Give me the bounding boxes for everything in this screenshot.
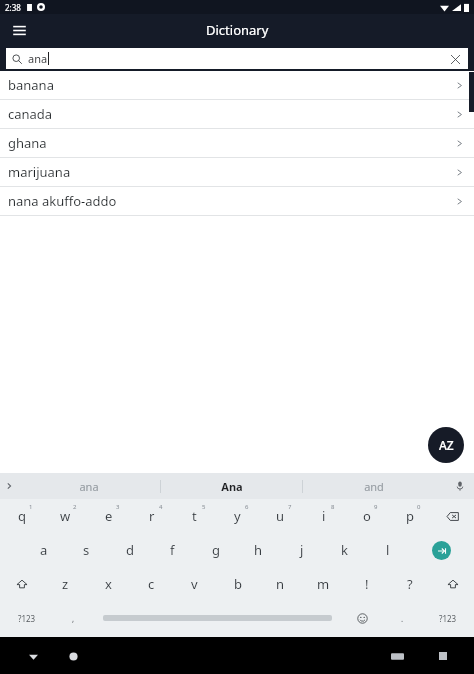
staticText: 0 (417, 503, 421, 511)
button[interactable]: Ana (161, 473, 302, 499)
button[interactable]: More suggestions (0, 477, 18, 495)
button[interactable]: Enter (409, 533, 474, 567)
staticText: ! (365, 575, 369, 593)
staticText: 5 (202, 503, 206, 511)
button[interactable]: j (280, 533, 323, 567)
button[interactable]: Shift (0, 567, 44, 601)
staticText: Ana (221, 479, 243, 494)
button[interactable]: Voice input (451, 477, 469, 495)
staticText: e (105, 507, 113, 525)
staticText: 2:38 (5, 2, 21, 13)
staticText: p (406, 507, 414, 525)
staticText: 9 (374, 503, 378, 511)
staticText: ?123 (439, 613, 457, 624)
button[interactable]: p (388, 499, 431, 533)
button[interactable]: Backspace (431, 499, 474, 533)
button[interactable]: Shift (431, 567, 474, 601)
button[interactable]: Space (93, 601, 342, 635)
button[interactable]: marijuana (0, 158, 474, 187)
staticText: ana (79, 479, 99, 494)
staticText: d (126, 541, 134, 559)
staticText: banana (8, 76, 54, 94)
button[interactable]: m (302, 567, 345, 601)
button[interactable]: banana (0, 71, 474, 100)
staticText: r (149, 507, 155, 525)
button[interactable]: Open navigation menu (6, 17, 32, 43)
staticText: canada (8, 105, 53, 123)
button[interactable]: w (44, 499, 87, 533)
staticText: , (72, 613, 75, 624)
button[interactable]: y (216, 499, 259, 533)
button[interactable]: e (87, 499, 130, 533)
button[interactable]: c (130, 567, 173, 601)
staticText: u (276, 507, 285, 525)
button[interactable]: ! (345, 567, 388, 601)
staticText: y (234, 507, 241, 525)
button[interactable]: g (194, 533, 237, 567)
button[interactable]: b (216, 567, 259, 601)
staticText: v (191, 575, 198, 593)
button[interactable]: v (173, 567, 216, 601)
button[interactable]: Home (60, 643, 86, 669)
staticText: marijuana (8, 163, 71, 181)
staticText: 6 (245, 503, 249, 511)
button[interactable]: s (65, 533, 108, 567)
staticText: i (322, 507, 326, 525)
staticText: c (148, 575, 155, 593)
button[interactable]: h (237, 533, 280, 567)
button[interactable]: Emoji (342, 601, 382, 635)
staticText: s (83, 541, 90, 559)
staticText: and (364, 479, 384, 494)
button[interactable]: ana (18, 473, 160, 499)
button[interactable]: d (108, 533, 151, 567)
button[interactable]: f (151, 533, 194, 567)
staticText: 7 (288, 503, 292, 511)
staticText: 1 (29, 503, 33, 511)
button[interactable]: ana (6, 48, 468, 69)
button[interactable]: u (259, 499, 302, 533)
button[interactable]: ?123 (0, 601, 53, 635)
button[interactable]: z (44, 567, 87, 601)
button[interactable]: nana akuffo-addo (0, 187, 474, 216)
button[interactable]: k (323, 533, 366, 567)
staticText: Dictionary (206, 21, 269, 39)
staticText: m (317, 575, 330, 593)
staticText: l (386, 541, 390, 559)
button[interactable]: Back (20, 643, 46, 669)
button[interactable]: q (0, 499, 44, 533)
staticText: n (276, 575, 285, 593)
button[interactable]: ?123 (422, 601, 474, 635)
staticText: 8 (331, 503, 335, 511)
staticText: 2 (73, 503, 77, 511)
button[interactable]: o (345, 499, 388, 533)
button[interactable]: n (259, 567, 302, 601)
button[interactable]: r (130, 499, 173, 533)
staticText: q (18, 507, 26, 525)
button[interactable]: l (366, 533, 409, 567)
staticText: o (363, 507, 371, 525)
button[interactable]: t (173, 499, 216, 533)
staticText: 3 (116, 503, 120, 511)
button[interactable]: ghana (0, 129, 474, 158)
staticText: z (62, 575, 69, 593)
staticText: x (105, 575, 112, 593)
button[interactable]: Sort A to Z (428, 427, 464, 463)
button[interactable]: a (22, 533, 65, 567)
button[interactable]: Keyboard (384, 643, 410, 669)
button[interactable]: and (303, 473, 444, 499)
button[interactable]: canada (0, 100, 474, 129)
button[interactable]: Recent apps (430, 643, 456, 669)
staticText: t (192, 507, 197, 525)
button[interactable]: x (87, 567, 130, 601)
button[interactable]: i (302, 499, 345, 533)
staticText: ghana (8, 134, 47, 152)
staticText: a (40, 541, 48, 559)
button[interactable]: Clear search (445, 49, 465, 69)
staticText: f (170, 541, 175, 559)
staticText: g (212, 541, 220, 559)
button[interactable]: ? (388, 567, 431, 601)
staticText: w (60, 507, 71, 525)
staticText: k (341, 541, 348, 559)
